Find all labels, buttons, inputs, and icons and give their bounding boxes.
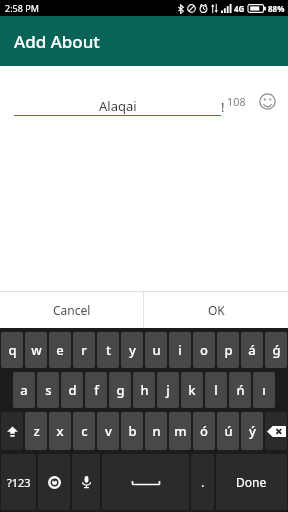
- staticText: w: [31, 341, 42, 359]
- button[interactable]: d: [61, 372, 83, 408]
- staticText: x: [56, 422, 64, 440]
- staticText: g: [116, 381, 125, 399]
- staticText: l: [214, 381, 218, 399]
- staticText: Add About: [14, 30, 100, 53]
- button[interactable]: ǵ: [265, 332, 287, 368]
- button[interactable]: ?123: [1, 454, 36, 510]
- button[interactable]: OK: [144, 292, 288, 328]
- button[interactable]: ó: [193, 412, 215, 450]
- button[interactable]: z: [25, 412, 47, 450]
- button[interactable]: o: [193, 332, 215, 368]
- staticText: p: [224, 341, 233, 359]
- button[interactable]: Input settings: [38, 454, 70, 510]
- staticText: b: [128, 422, 137, 440]
- staticText: ý: [249, 422, 256, 440]
- staticText: y: [129, 341, 136, 359]
- button[interactable]: á: [241, 332, 263, 368]
- staticText: e: [56, 341, 64, 359]
- button[interactable]: Space: [102, 454, 189, 510]
- button[interactable]: l: [205, 372, 227, 408]
- button[interactable]: g: [109, 372, 131, 408]
- button[interactable]: Done: [216, 454, 287, 510]
- button[interactable]: c: [73, 412, 95, 450]
- staticText: n: [152, 422, 161, 440]
- staticText: á: [248, 341, 256, 359]
- staticText: f: [94, 381, 99, 399]
- button[interactable]: t: [97, 332, 119, 368]
- staticText: c: [81, 422, 88, 440]
- staticText: t: [106, 341, 111, 359]
- button[interactable]: y: [121, 332, 143, 368]
- staticText: 2:58 PM: [5, 2, 39, 14]
- staticText: u: [152, 341, 161, 359]
- staticText: j: [166, 381, 170, 399]
- button[interactable]: ú: [217, 412, 239, 450]
- button[interactable]: Shift: [1, 412, 23, 450]
- staticText: ǵ: [272, 341, 281, 359]
- button[interactable]: ń: [229, 372, 251, 408]
- button[interactable]: a: [13, 372, 35, 408]
- staticText: 88%: [268, 3, 285, 14]
- button[interactable]: Cancel: [0, 292, 143, 328]
- staticText: k: [188, 381, 196, 399]
- staticText: ?123: [7, 475, 31, 490]
- staticText: Alaqai: [99, 97, 137, 115]
- staticText: Done: [236, 474, 267, 490]
- button[interactable]: k: [181, 372, 203, 408]
- button[interactable]: v: [97, 412, 119, 450]
- button[interactable]: w: [25, 332, 47, 368]
- staticText: z: [33, 422, 40, 440]
- button[interactable]: x: [49, 412, 71, 450]
- button[interactable]: j: [157, 372, 179, 408]
- staticText: q: [8, 341, 17, 359]
- button[interactable]: Voice input: [72, 454, 100, 510]
- staticText: r: [81, 341, 87, 359]
- button[interactable]: s: [37, 372, 59, 408]
- staticText: 4G: [234, 3, 245, 14]
- button[interactable]: p: [217, 332, 239, 368]
- button[interactable]: r: [73, 332, 95, 368]
- button[interactable]: Emoji: [254, 90, 280, 113]
- staticText: 108: [227, 94, 246, 109]
- button[interactable]: ı: [253, 372, 275, 408]
- button[interactable]: b: [121, 412, 143, 450]
- staticText: ń: [236, 381, 245, 399]
- button[interactable]: u: [145, 332, 167, 368]
- staticText: i: [178, 341, 182, 359]
- button[interactable]: e: [49, 332, 71, 368]
- staticText: h: [140, 381, 149, 399]
- staticText: ó: [200, 422, 208, 440]
- staticText: s: [45, 381, 52, 399]
- staticText: m: [174, 422, 187, 440]
- button[interactable]: .: [191, 454, 214, 510]
- button[interactable]: Backspace: [265, 412, 287, 450]
- staticText: OK: [208, 302, 225, 318]
- button[interactable]: h: [133, 372, 155, 408]
- staticText: Cancel: [53, 302, 91, 318]
- button[interactable]: i: [169, 332, 191, 368]
- staticText: d: [68, 381, 77, 399]
- button[interactable]: q: [1, 332, 23, 368]
- staticText: o: [200, 341, 208, 359]
- staticText: ú: [224, 422, 233, 440]
- staticText: .: [201, 473, 205, 491]
- staticText: v: [105, 422, 112, 440]
- staticText: ı: [262, 381, 266, 399]
- staticText: a: [20, 381, 28, 399]
- button[interactable]: ý: [241, 412, 263, 450]
- button[interactable]: n: [145, 412, 167, 450]
- button[interactable]: f: [85, 372, 107, 408]
- button[interactable]: m: [169, 412, 191, 450]
